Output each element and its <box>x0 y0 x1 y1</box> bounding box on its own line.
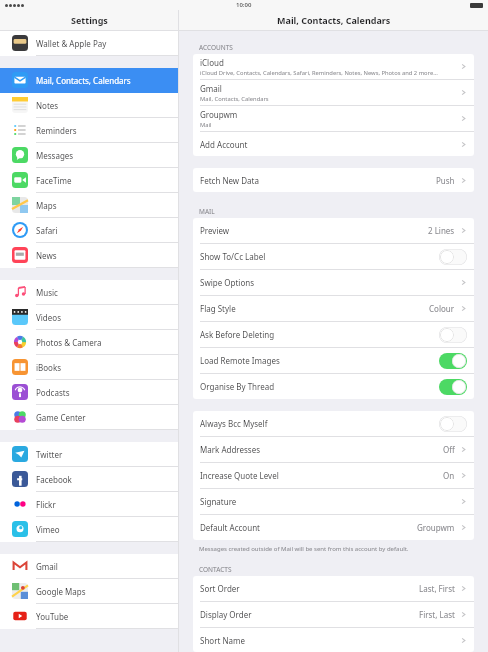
staticText: Always Bcc Myself <box>200 418 268 429</box>
staticText: News <box>36 250 57 261</box>
staticText: Wallet & Apple Pay <box>36 38 107 49</box>
staticText: Messages <box>36 150 74 161</box>
button[interactable]: News <box>0 243 178 268</box>
staticText: Organise By Thread <box>200 381 275 392</box>
staticText: Display Order <box>200 609 252 620</box>
staticText: On <box>443 470 455 481</box>
staticText: Last, First <box>419 583 455 594</box>
button[interactable]: Signature <box>193 489 474 515</box>
button[interactable]: FaceTime <box>0 168 178 193</box>
staticText: FaceTime <box>36 175 72 186</box>
staticText: Podcasts <box>36 387 70 398</box>
button[interactable]: Messages <box>0 143 178 168</box>
button[interactable]: Music <box>0 280 178 305</box>
staticText: Off <box>443 444 455 455</box>
button[interactable]: Reminders <box>0 118 178 143</box>
staticText: Google Maps <box>36 586 86 597</box>
staticText: Groupwm <box>200 109 238 120</box>
staticText: Vimeo <box>36 524 60 535</box>
button[interactable]: On <box>439 353 467 369</box>
staticText: Messages created outside of Mail will be… <box>199 545 409 553</box>
staticText: Game Center <box>36 412 86 423</box>
button[interactable]: Google Maps <box>0 579 178 604</box>
staticText: Mail <box>200 121 212 129</box>
staticText: Mark Addresses <box>200 444 261 455</box>
staticText: Mail, Contacts, Calendars <box>277 14 391 26</box>
staticText: Maps <box>36 200 57 211</box>
button[interactable]: Maps <box>0 193 178 218</box>
staticText: Facebook <box>36 474 72 485</box>
staticText: Add Account <box>200 139 248 150</box>
button[interactable]: Podcasts <box>0 380 178 405</box>
staticText: Swipe Options <box>200 277 254 288</box>
staticText: Safari <box>36 225 58 236</box>
button[interactable]: Organise By Thread <box>193 374 474 399</box>
button[interactable]: Short Name <box>193 628 474 652</box>
staticText: Gmail <box>36 561 58 572</box>
staticText: Ask Before Deleting <box>200 329 275 340</box>
staticText: First, Last <box>419 609 455 620</box>
staticText: Show To/Cc Label <box>200 251 266 262</box>
button[interactable]: Facebook <box>0 467 178 492</box>
button[interactable]: Vimeo <box>0 517 178 542</box>
button[interactable]: Notes <box>0 93 178 118</box>
staticText: Default Account <box>200 522 260 533</box>
button[interactable]: Flickr <box>0 492 178 517</box>
staticText: MAIL <box>199 207 215 216</box>
staticText: Push <box>436 175 455 186</box>
button[interactable]: Flag Style <box>193 296 474 322</box>
button[interactable]: Always Bcc Myself <box>193 411 474 437</box>
button[interactable]: Wallet & Apple Pay <box>0 31 178 56</box>
staticText: iCloud <box>200 57 224 68</box>
staticText: Fetch New Data <box>200 175 259 186</box>
staticText: CONTACTS <box>199 565 232 574</box>
button[interactable]: Swipe Options <box>193 270 474 296</box>
button[interactable]: Safari <box>0 218 178 243</box>
staticText: Load Remote Images <box>200 355 280 366</box>
staticText: Music <box>36 287 58 298</box>
staticText: Groupwm <box>417 522 455 533</box>
button[interactable]: Preview <box>193 218 474 244</box>
button[interactable]: Photos & Camera <box>0 330 178 355</box>
staticText: Notes <box>36 100 59 111</box>
staticText: Gmail <box>200 83 222 94</box>
button[interactable]: Videos <box>0 305 178 330</box>
button[interactable]: Off <box>439 327 467 343</box>
staticText: Photos & Camera <box>36 337 102 348</box>
button[interactable]: Display Order <box>193 602 474 628</box>
button[interactable]: Off <box>439 416 467 432</box>
button[interactable]: Increase Quote Level <box>193 463 474 489</box>
button[interactable]: Twitter <box>0 442 178 467</box>
button[interactable]: Groupwm <box>193 106 474 132</box>
staticText: 2 Lines <box>428 225 455 236</box>
button[interactable]: Load Remote Images <box>193 348 474 374</box>
staticText: YouTube <box>36 611 69 622</box>
button[interactable]: Mark Addresses <box>193 437 474 463</box>
staticText: 10:00 <box>236 1 252 9</box>
staticText: Videos <box>36 312 61 323</box>
button[interactable]: Default Account <box>193 515 474 540</box>
button[interactable]: Fetch New Data <box>193 168 474 192</box>
staticText: Reminders <box>36 125 77 136</box>
button[interactable]: On <box>439 379 467 395</box>
button[interactable]: Off <box>439 249 467 265</box>
button[interactable]: Add Account <box>193 132 474 156</box>
button[interactable]: Sort Order <box>193 576 474 602</box>
button[interactable]: Show To/Cc Label <box>193 244 474 270</box>
staticText: Short Name <box>200 635 246 646</box>
staticText: Flag Style <box>200 303 236 314</box>
button[interactable]: iCloud <box>193 54 474 80</box>
button[interactable]: Gmail <box>193 80 474 106</box>
staticText: ACCOUNTS <box>199 43 233 52</box>
staticText: Sort Order <box>200 583 240 594</box>
button[interactable]: Gmail <box>0 554 178 579</box>
staticText: iCloud Drive, Contacts, Calendars, Safar… <box>200 69 438 77</box>
button[interactable]: Ask Before Deleting <box>193 322 474 348</box>
staticText: Twitter <box>36 449 63 460</box>
staticText: Colour <box>429 303 455 314</box>
button[interactable]: Mail, Contacts, Calendars <box>0 68 178 93</box>
staticText: Mail, Contacts, Calendars <box>200 95 269 103</box>
button[interactable]: iBooks <box>0 355 178 380</box>
button[interactable]: Game Center <box>0 405 178 430</box>
button[interactable]: YouTube <box>0 604 178 629</box>
